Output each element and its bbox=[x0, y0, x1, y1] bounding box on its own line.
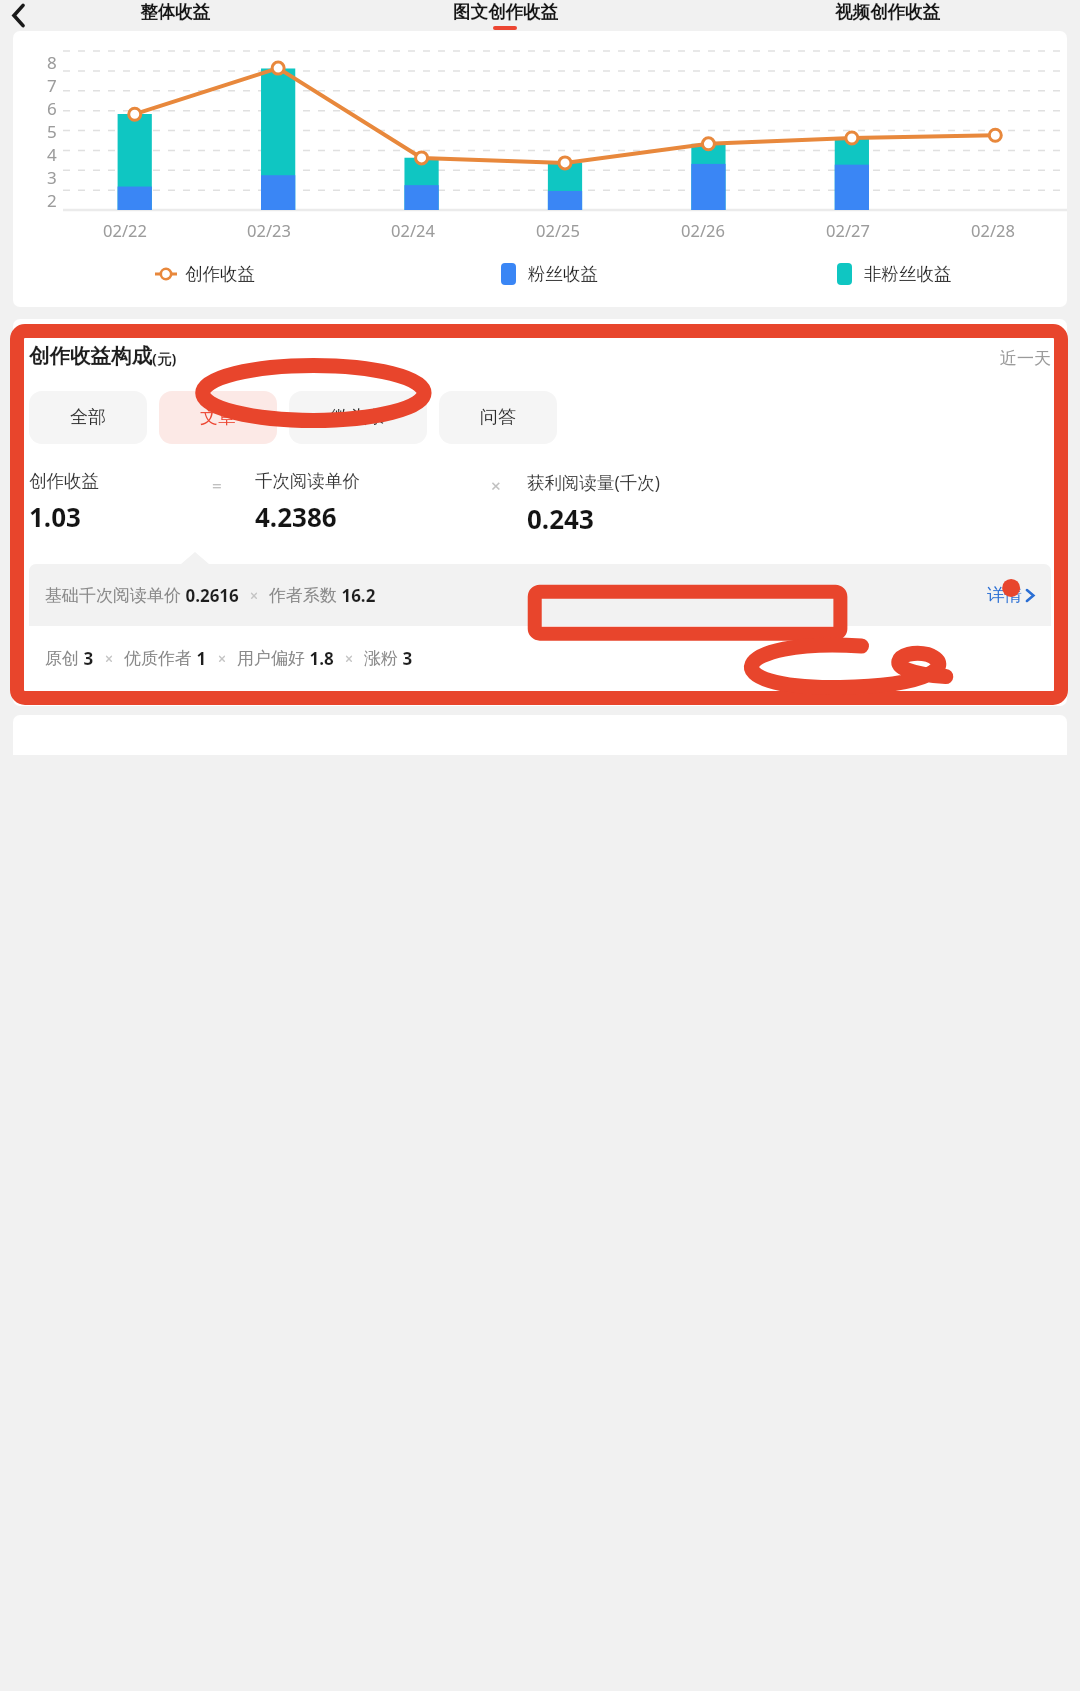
staticText: = bbox=[212, 474, 222, 497]
staticText: 0.2616 bbox=[181, 584, 239, 607]
staticText: 视频创作收益 bbox=[835, 1, 940, 23]
staticText: 优质作者 bbox=[124, 648, 192, 669]
staticText: 02/25 bbox=[536, 219, 580, 241]
button[interactable]: 详情 bbox=[987, 584, 1035, 606]
staticText: 非粉丝收益 bbox=[864, 263, 952, 285]
staticText: 3 bbox=[79, 647, 94, 670]
staticText: 全部 bbox=[70, 406, 106, 429]
staticText: 微头条 bbox=[331, 406, 385, 429]
staticText: 0.243 bbox=[527, 501, 594, 536]
button[interactable]: 视频创作收益 bbox=[696, 0, 1078, 31]
staticText: 作者系数 bbox=[269, 585, 337, 606]
staticText: 文章 bbox=[200, 406, 236, 429]
button[interactable]: 微头条 bbox=[289, 391, 427, 444]
staticText: 图文创作收益 bbox=[453, 1, 558, 23]
staticText: 4.2386 bbox=[255, 499, 337, 534]
staticText: 02/26 bbox=[681, 219, 725, 241]
button[interactable]: 图文创作收益 bbox=[314, 0, 696, 31]
staticText: 涨粉 bbox=[364, 648, 398, 669]
button[interactable]: 整体收益 bbox=[36, 0, 314, 31]
staticText: 4 bbox=[47, 143, 57, 166]
staticText: 02/22 bbox=[103, 219, 147, 241]
staticText: (元) bbox=[152, 348, 177, 368]
staticText: × bbox=[334, 649, 364, 668]
staticText: × bbox=[207, 649, 237, 668]
staticText: × bbox=[239, 586, 269, 605]
staticText: 近一天 bbox=[1000, 348, 1051, 369]
staticText: 2 bbox=[47, 189, 57, 210]
staticText: 获利阅读量(千次) bbox=[527, 470, 660, 494]
staticText: 基础千次阅读单价 bbox=[45, 585, 181, 606]
staticText: 创作收益构成 bbox=[29, 343, 152, 369]
staticText: 8 bbox=[47, 51, 57, 74]
staticText: 16.2 bbox=[337, 584, 376, 607]
staticText: 详情 bbox=[987, 584, 1022, 606]
staticText: 3 bbox=[47, 166, 57, 189]
staticText: 6 bbox=[47, 97, 57, 120]
staticText: 整体收益 bbox=[140, 1, 210, 23]
button[interactable]: 近一天 bbox=[1000, 348, 1051, 369]
staticText: 粉丝收益 bbox=[528, 263, 598, 285]
staticText: 5 bbox=[47, 120, 57, 143]
button[interactable]: 问答 bbox=[439, 391, 557, 444]
staticText: 1 bbox=[192, 647, 207, 670]
staticText: 7 bbox=[47, 74, 57, 97]
button[interactable]: Back bbox=[0, 0, 36, 31]
button[interactable]: 全部 bbox=[29, 391, 147, 444]
staticText: 用户偏好 bbox=[237, 648, 305, 669]
staticText: 1.03 bbox=[29, 499, 81, 534]
staticText: 千次阅读单价 bbox=[255, 470, 360, 492]
staticText: × bbox=[94, 649, 124, 668]
staticText: 02/27 bbox=[826, 219, 870, 241]
staticText: 1.8 bbox=[305, 647, 334, 670]
button[interactable]: 文章 bbox=[159, 391, 277, 444]
staticText: 02/23 bbox=[247, 219, 291, 241]
staticText: 问答 bbox=[480, 406, 516, 429]
staticText: × bbox=[491, 474, 501, 497]
staticText: 原创 bbox=[45, 648, 79, 669]
staticText: 创作收益 bbox=[29, 470, 99, 492]
staticText: 02/28 bbox=[971, 219, 1015, 241]
staticText: 创作收益 bbox=[185, 263, 255, 285]
staticText: 3 bbox=[398, 647, 413, 670]
staticText: 02/24 bbox=[391, 219, 435, 241]
